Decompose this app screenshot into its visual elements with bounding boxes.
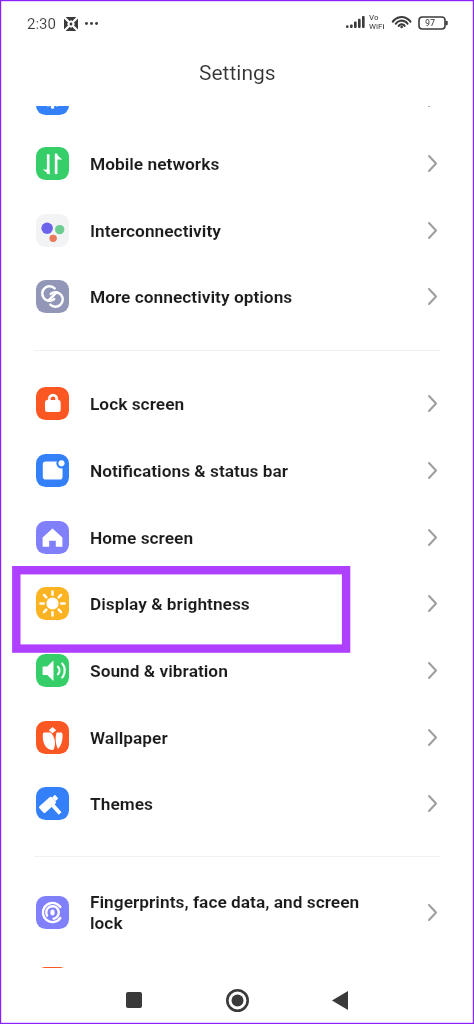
button[interactable]: Lock screen [0,370,474,437]
button[interactable]: Themes [0,770,474,837]
staticText: Mobile networks [90,154,375,174]
staticText: Fingerprints, face data, and screen lock [90,892,375,933]
staticText: Home screen [90,528,375,548]
button[interactable]: Recent apps [110,976,158,1024]
staticText: Sound & vibration [90,661,375,681]
button[interactable]: Mobile networks [0,130,474,197]
staticText: Notifications & status bar [90,461,375,481]
staticText: 2:30 [27,15,56,33]
staticText: Themes [90,794,375,814]
staticText: Vo [369,13,379,22]
button[interactable]: Interconnectivity [0,197,474,264]
button[interactable]: Wallpaper [0,704,474,771]
button[interactable]: Sound & vibration [0,637,474,704]
staticText: Settings [199,61,276,86]
staticText: 97 [425,18,436,29]
button[interactable]: Fingerprints, face data, and screen lock [0,879,474,946]
staticText: Lock screen [90,394,375,414]
button[interactable]: Privacy protection [0,950,474,968]
staticText: More connectivity options [90,287,375,307]
staticText: Display & brightness [90,594,375,614]
button[interactable]: Home screen [0,504,474,571]
button[interactable]: More connectivity options [0,263,474,330]
button[interactable]: Notifications & status bar [0,437,474,504]
button[interactable]: Back [316,976,364,1024]
button[interactable]: Display & brightness [0,570,474,637]
staticText: Interconnectivity [90,221,375,241]
staticText: WiFi [369,22,385,31]
button[interactable]: Wi-Fi [0,106,474,132]
button[interactable]: Home [213,976,261,1024]
staticText: Wallpaper [90,728,375,748]
